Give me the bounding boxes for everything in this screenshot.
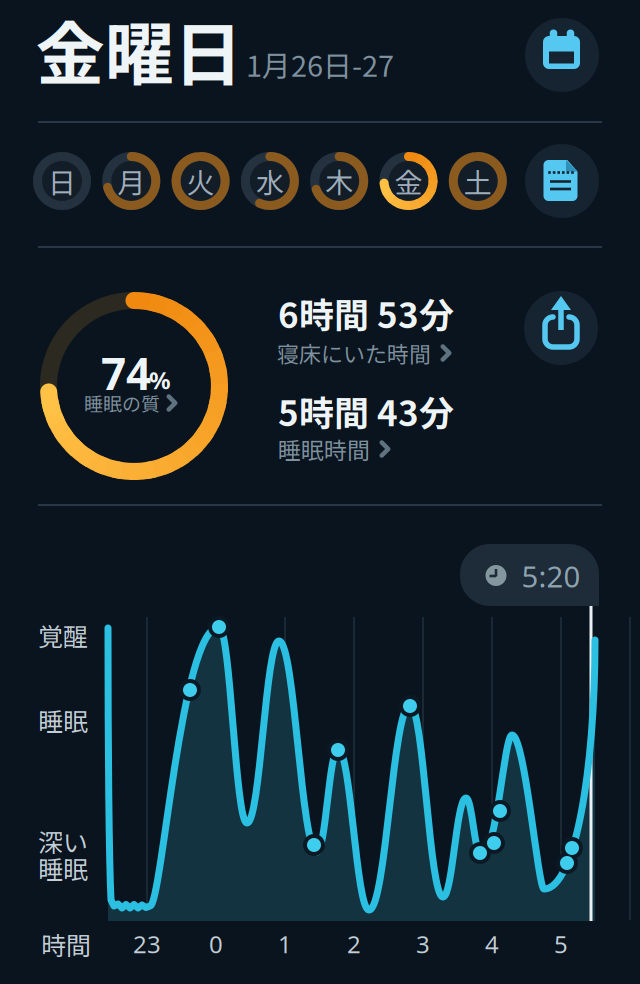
- staticText: 寝床にいた時間: [277, 337, 431, 369]
- staticText: 睡眠時間: [278, 432, 370, 466]
- staticText: 時間: [41, 926, 91, 962]
- staticText: 3: [416, 928, 430, 960]
- staticText: 火: [187, 161, 215, 201]
- staticText: 5: [554, 928, 568, 960]
- staticText: 深い: [38, 823, 88, 859]
- staticText: 日: [48, 161, 76, 201]
- staticText: 金曜日: [35, 0, 242, 99]
- staticText: 睡眠: [38, 702, 88, 738]
- staticText: 6時間 53分: [278, 288, 454, 338]
- staticText: 4: [485, 928, 499, 960]
- staticText: 23: [133, 928, 161, 960]
- staticText: 5:20: [521, 556, 580, 595]
- staticText: 2: [347, 928, 361, 960]
- staticText: 1: [278, 928, 292, 960]
- staticText: 睡眠: [38, 850, 88, 886]
- staticText: 木: [325, 161, 353, 201]
- staticText: %: [149, 364, 171, 396]
- staticText: 1月26日-27: [246, 43, 394, 85]
- staticText: 月: [117, 161, 145, 201]
- staticText: 覚醒: [38, 617, 88, 653]
- staticText: 睡眠の質: [84, 389, 160, 417]
- staticText: 5時間 43分: [278, 386, 454, 436]
- staticText: 水: [256, 161, 284, 201]
- staticText: 金: [394, 161, 422, 201]
- staticText: 土: [464, 161, 492, 201]
- staticText: 0: [209, 928, 223, 960]
- staticText: 74: [101, 344, 151, 402]
